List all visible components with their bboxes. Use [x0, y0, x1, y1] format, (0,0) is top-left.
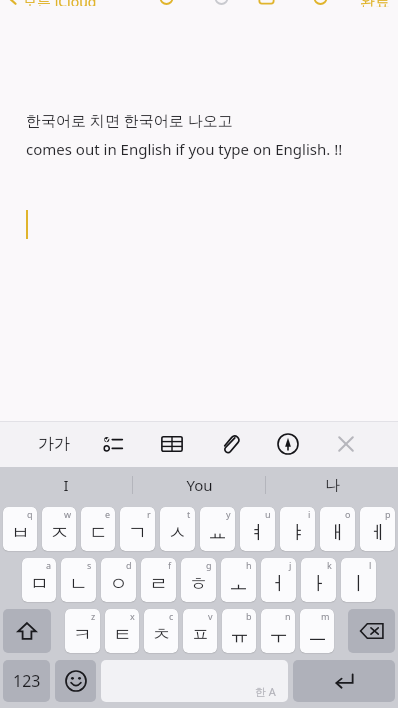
button[interactable]: d	[101, 558, 136, 602]
button[interactable]: t	[160, 507, 195, 551]
button[interactable]: Back to All iCloud	[6, 0, 97, 6]
staticText: k	[327, 559, 332, 571]
button[interactable]: i	[280, 507, 315, 551]
staticText: ㅎ	[189, 572, 208, 596]
button[interactable]: Attach	[212, 426, 248, 462]
staticText: p	[385, 508, 391, 520]
staticText: ㅏ	[309, 572, 328, 596]
button[interactable]: 완료	[360, 0, 390, 7]
staticText: l	[369, 559, 372, 571]
staticText: o	[345, 508, 351, 520]
button[interactable]: 123	[3, 660, 50, 702]
staticText: m	[321, 610, 330, 622]
button[interactable]: w	[42, 507, 76, 551]
button[interactable]: h	[221, 558, 256, 602]
button[interactable]: Table	[154, 426, 190, 462]
staticText: ㄹ	[149, 572, 168, 596]
staticText: z	[91, 610, 96, 622]
staticText: n	[285, 610, 291, 622]
button[interactable]: Share	[211, 0, 232, 5]
staticText: w	[64, 508, 72, 520]
button[interactable]: x	[105, 609, 139, 653]
staticText: j	[289, 559, 292, 571]
staticText: b	[246, 610, 252, 622]
button[interactable]: Space	[101, 660, 288, 702]
staticText: ㅌ	[113, 623, 132, 647]
staticText: 한국어로 치면 한국어로 나오고	[26, 110, 233, 130]
button[interactable]: v	[183, 609, 217, 653]
staticText: ㅋ	[73, 623, 92, 647]
button[interactable]: Backspace	[348, 609, 395, 653]
staticText: 한 A	[255, 684, 276, 699]
staticText: c	[169, 610, 174, 622]
button[interactable]: n	[261, 609, 295, 653]
button[interactable]: You	[133, 467, 265, 503]
staticText: u	[265, 508, 271, 520]
button[interactable]: Emoji	[55, 660, 96, 702]
button[interactable]: p	[360, 507, 395, 551]
staticText: ㅣ	[349, 572, 368, 596]
staticText: ㅁ	[30, 572, 49, 596]
staticText: ㄷ	[89, 521, 108, 545]
staticText: ㅊ	[152, 623, 171, 647]
button[interactable]: a	[22, 558, 56, 602]
button[interactable]: Shift	[3, 609, 51, 653]
staticText: ㅇ	[109, 572, 128, 596]
staticText: h	[246, 559, 252, 571]
button[interactable]: g	[181, 558, 216, 602]
staticText: ㅔ	[368, 521, 387, 545]
staticText: ㅓ	[269, 572, 288, 596]
staticText: a	[46, 559, 52, 571]
button[interactable]: o	[320, 507, 355, 551]
staticText: g	[206, 559, 212, 571]
staticText: v	[208, 610, 213, 622]
button[interactable]: e	[81, 507, 115, 551]
staticText: ㅗ	[229, 572, 248, 596]
staticText: q	[27, 508, 33, 520]
staticText: ㅑ	[288, 521, 307, 545]
button[interactable]: q	[3, 507, 37, 551]
staticText: y	[226, 508, 231, 520]
button[interactable]: l	[341, 558, 376, 602]
staticText: ㅂ	[11, 521, 30, 545]
staticText: ㅡ	[308, 623, 327, 647]
button[interactable]: j	[261, 558, 296, 602]
staticText: i	[308, 508, 311, 520]
button[interactable]: Delete	[256, 0, 277, 5]
button[interactable]: I	[0, 467, 132, 503]
button[interactable]: Checklist	[96, 426, 132, 462]
staticText: f	[168, 559, 172, 571]
button[interactable]: b	[222, 609, 256, 653]
button[interactable]: Compose	[156, 0, 177, 5]
button[interactable]: 나	[266, 467, 398, 503]
button[interactable]: c	[144, 609, 178, 653]
button[interactable]: f	[141, 558, 176, 602]
button[interactable]: m	[300, 609, 334, 653]
staticText: r	[147, 508, 151, 520]
staticText: I	[63, 475, 69, 495]
button[interactable]: More	[310, 0, 331, 5]
staticText: ㅕ	[248, 521, 267, 545]
staticText: ㅛ	[208, 521, 227, 545]
button[interactable]: Markup	[270, 426, 306, 462]
staticText: ㄱ	[128, 521, 147, 545]
staticText: t	[187, 508, 191, 520]
button[interactable]: u	[240, 507, 275, 551]
staticText: x	[130, 610, 135, 622]
button[interactable]: Close keyboard	[328, 426, 364, 462]
button[interactable]: 가가	[34, 424, 74, 464]
button[interactable]: r	[120, 507, 155, 551]
staticText: 가가	[38, 434, 70, 454]
staticText: e	[105, 508, 111, 520]
button[interactable]: s	[61, 558, 96, 602]
staticText: ㅐ	[328, 521, 347, 545]
button[interactable]: Return	[293, 660, 395, 702]
staticText: 123	[13, 670, 41, 692]
button[interactable]: y	[200, 507, 235, 551]
staticText: 모든 iCloud	[23, 0, 97, 6]
staticText: ㅍ	[191, 623, 210, 647]
staticText: ㅅ	[168, 521, 187, 545]
button[interactable]: k	[301, 558, 336, 602]
button[interactable]: z	[65, 609, 100, 653]
staticText: s	[87, 559, 92, 571]
